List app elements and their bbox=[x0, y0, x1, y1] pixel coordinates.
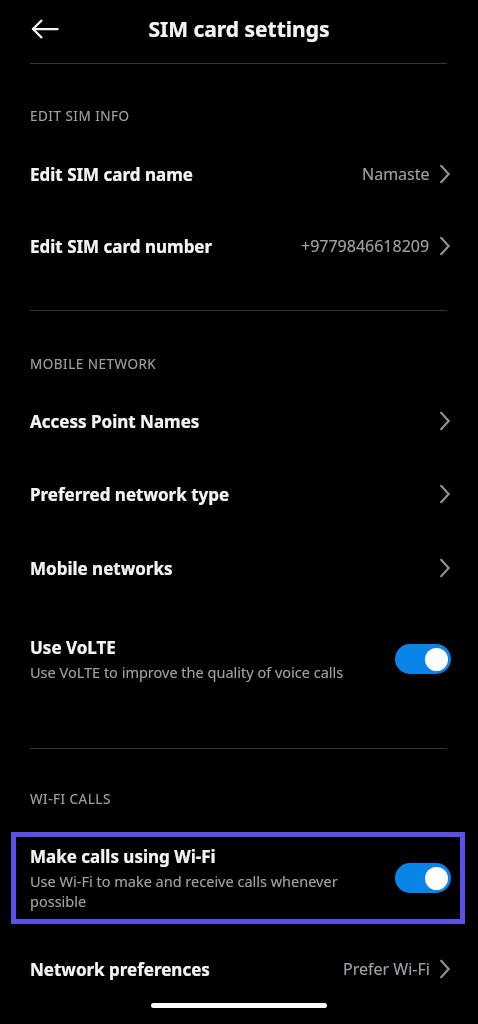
staticText: Mobile networks bbox=[30, 557, 173, 580]
button[interactable]: Edit SIM card number bbox=[0, 223, 478, 269]
staticText: Use Wi-Fi to make and receive calls when… bbox=[30, 871, 367, 911]
staticText: Prefer Wi-Fi bbox=[343, 958, 430, 980]
button[interactable]: Mobile networks bbox=[0, 545, 478, 591]
staticText: Edit SIM card number bbox=[30, 235, 213, 258]
staticText: MOBILE NETWORK bbox=[30, 355, 157, 373]
staticText: EDIT SIM INFO bbox=[30, 107, 130, 125]
staticText: Preferred network type bbox=[30, 483, 230, 506]
button[interactable]: Make calls using Wi-Fi bbox=[395, 863, 451, 893]
button[interactable]: Preferred network type bbox=[0, 471, 478, 517]
button[interactable]: Make calls using Wi-Fi bbox=[11, 832, 465, 924]
staticText: Namaste bbox=[362, 163, 430, 185]
button[interactable]: Access Point Names bbox=[0, 398, 478, 444]
button[interactable]: Use VoLTE bbox=[0, 622, 478, 696]
button[interactable]: Edit SIM card name bbox=[0, 151, 478, 197]
button[interactable]: Use VoLTE bbox=[395, 644, 451, 674]
staticText: Use VoLTE to improve the quality of voic… bbox=[30, 662, 367, 682]
button[interactable]: Network preferences bbox=[0, 946, 478, 992]
staticText: Access Point Names bbox=[30, 410, 200, 433]
staticText: SIM card settings bbox=[148, 15, 330, 44]
staticText: WI-FI CALLS bbox=[30, 790, 111, 808]
button[interactable]: Back bbox=[30, 14, 60, 44]
staticText: Edit SIM card name bbox=[30, 163, 193, 186]
staticText: Make calls using Wi-Fi bbox=[30, 845, 216, 868]
staticText: Use VoLTE bbox=[30, 636, 116, 659]
staticText: +9779846618209 bbox=[301, 235, 430, 257]
staticText: Network preferences bbox=[30, 958, 210, 981]
